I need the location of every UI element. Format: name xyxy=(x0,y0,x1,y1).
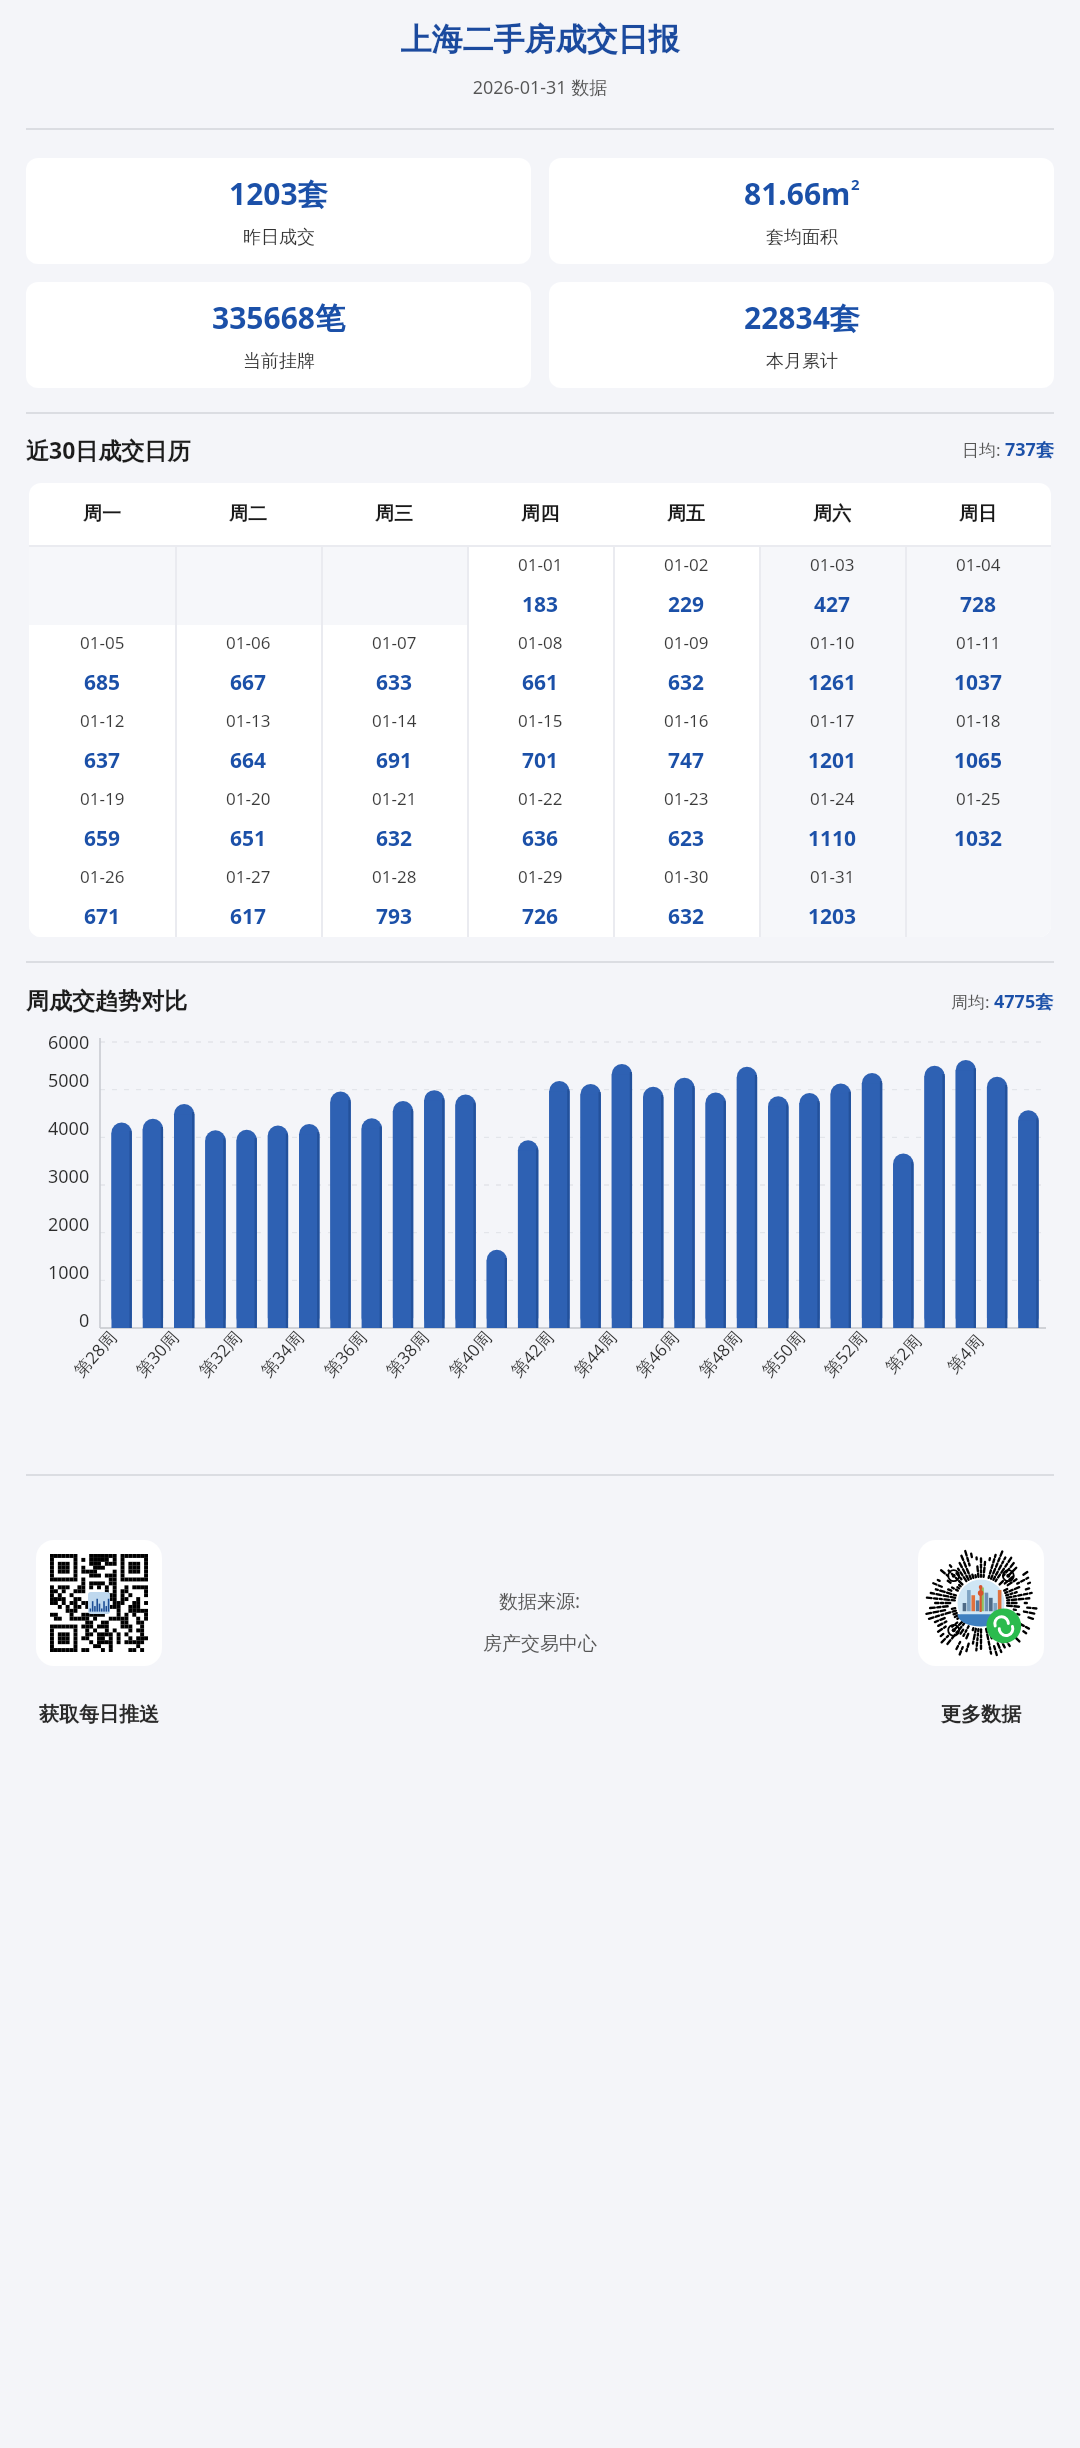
button[interactable]: 01-14 xyxy=(321,703,467,781)
button[interactable]: 01-27 xyxy=(175,859,321,937)
staticText: 633 xyxy=(376,668,413,697)
staticText: 第2周 xyxy=(880,1329,926,1378)
staticText: 01-12 xyxy=(80,709,125,732)
button[interactable]: 01-08 xyxy=(467,625,613,703)
staticText: 01-04 xyxy=(956,553,1001,576)
staticText: 01-28 xyxy=(372,865,417,888)
button[interactable]: 01-01 xyxy=(467,547,613,625)
button[interactable]: 01-13 xyxy=(175,703,321,781)
button[interactable]: 01-26 xyxy=(29,859,175,937)
button[interactable]: 01-29 xyxy=(467,859,613,937)
button[interactable]: 01-31 xyxy=(759,859,905,937)
staticText: 周五 xyxy=(667,502,705,526)
staticText: 房产交易中心 xyxy=(483,1632,597,1656)
button[interactable]: 01-21 xyxy=(321,781,467,859)
staticText: 01-21 xyxy=(372,787,417,810)
staticText: 427 xyxy=(814,590,851,619)
button[interactable]: 01-11 xyxy=(905,625,1051,703)
staticText: 632 xyxy=(668,902,705,931)
staticText: 4775套 xyxy=(994,989,1054,1014)
button[interactable]: 01-05 xyxy=(29,625,175,703)
button[interactable]: 01-17 xyxy=(759,703,905,781)
staticText: 671 xyxy=(84,902,121,931)
staticText: 01-14 xyxy=(372,709,417,732)
staticText: 第40周 xyxy=(443,1326,497,1381)
staticText: 第4周 xyxy=(942,1329,988,1378)
staticText: 01-18 xyxy=(956,709,1001,732)
button[interactable]: 01-09 xyxy=(613,625,759,703)
button[interactable]: 01-10 xyxy=(759,625,905,703)
staticText: 01-17 xyxy=(810,709,855,732)
staticText: 728 xyxy=(960,590,997,619)
button[interactable]: 01-12 xyxy=(29,703,175,781)
staticText: 661 xyxy=(522,668,559,697)
button[interactable]: 01-07 xyxy=(321,625,467,703)
staticText: 651 xyxy=(230,824,267,853)
staticText: 周一 xyxy=(83,502,121,526)
button[interactable]: 22834套 xyxy=(549,282,1054,388)
staticText: 第38周 xyxy=(380,1326,434,1381)
staticText: 第44周 xyxy=(568,1326,622,1381)
staticText: 691 xyxy=(376,746,413,775)
staticText: 0 xyxy=(79,1308,90,1333)
staticText: 335668笔 xyxy=(212,297,345,338)
staticText: 685 xyxy=(84,668,121,697)
staticText: 01-26 xyxy=(80,865,125,888)
staticText: 套均面积 xyxy=(766,226,838,249)
staticText: 793 xyxy=(376,902,413,931)
staticText: 01-22 xyxy=(518,787,563,810)
button[interactable]: 01-22 xyxy=(467,781,613,859)
button[interactable]: 01-18 xyxy=(905,703,1051,781)
button[interactable]: 获取每日推送 二维码 xyxy=(36,1540,162,1727)
staticText: 01-30 xyxy=(664,865,709,888)
button[interactable]: 1203套 xyxy=(26,158,531,264)
button[interactable]: 01-06 xyxy=(175,625,321,703)
staticText: 获取每日推送 xyxy=(39,1702,159,1727)
staticText: 当前挂牌 xyxy=(243,350,315,373)
staticText: 01-13 xyxy=(226,709,271,732)
button[interactable]: 01-03 xyxy=(759,547,905,625)
staticText: 1110 xyxy=(808,824,857,853)
button[interactable]: 01-25 xyxy=(905,781,1051,859)
staticText: 1201 xyxy=(808,746,857,775)
staticText: 3000 xyxy=(48,1164,90,1189)
button[interactable]: 01-23 xyxy=(613,781,759,859)
button[interactable]: 335668笔 xyxy=(26,282,531,388)
staticText: 第30周 xyxy=(130,1326,184,1381)
staticText: 01-11 xyxy=(956,631,1001,654)
staticText: 1261 xyxy=(808,668,857,697)
button[interactable]: 81.66m xyxy=(549,158,1054,264)
staticText: 日均: xyxy=(962,438,1005,461)
staticText: 623 xyxy=(668,824,705,853)
button[interactable]: 01-28 xyxy=(321,859,467,937)
button[interactable]: 01-04 xyxy=(905,547,1051,625)
staticText: 01-31 xyxy=(810,865,855,888)
button[interactable]: 01-16 xyxy=(613,703,759,781)
staticText: 1000 xyxy=(48,1260,90,1285)
staticText: 第36周 xyxy=(318,1326,372,1381)
button[interactable]: 01-24 xyxy=(759,781,905,859)
staticText: 01-24 xyxy=(810,787,855,810)
staticText: 659 xyxy=(84,824,121,853)
staticText: 第52周 xyxy=(818,1326,872,1381)
staticText: 01-15 xyxy=(518,709,563,732)
staticText: 4000 xyxy=(48,1116,90,1141)
button[interactable]: 更多数据 小程序码 xyxy=(918,1540,1044,1727)
button[interactable]: 01-30 xyxy=(613,859,759,937)
button[interactable]: 01-02 xyxy=(613,547,759,625)
staticText: 01-05 xyxy=(80,631,125,654)
staticText: 01-03 xyxy=(810,553,855,576)
staticText: 周成交趋势对比 xyxy=(26,987,187,1016)
staticText: 周六 xyxy=(813,502,851,526)
staticText: 1065 xyxy=(954,746,1003,775)
staticText: 第28周 xyxy=(68,1326,122,1381)
staticText: 637 xyxy=(84,746,121,775)
button[interactable]: 01-19 xyxy=(29,781,175,859)
staticText: 周四 xyxy=(521,502,559,526)
staticText: 01-01 xyxy=(518,553,563,576)
staticText: 01-16 xyxy=(664,709,709,732)
button[interactable]: 01-20 xyxy=(175,781,321,859)
staticText: 632 xyxy=(376,824,413,853)
button[interactable]: 01-15 xyxy=(467,703,613,781)
staticText: 737套 xyxy=(1005,437,1054,462)
